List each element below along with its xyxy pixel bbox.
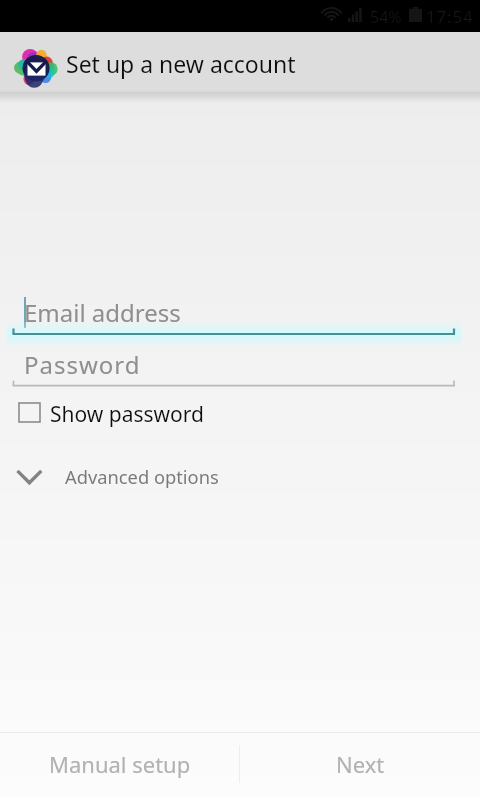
- staticText: 54%: [370, 6, 402, 28]
- staticText: 17:54: [426, 5, 474, 28]
- button[interactable]: Show password: [0, 397, 480, 431]
- button[interactable]: Email address: [12, 292, 456, 338]
- staticText: Password: [24, 348, 141, 381]
- other: Email app: [14, 47, 59, 87]
- button[interactable]: Manual setup: [0, 733, 239, 795]
- button[interactable]: Email app: [0, 32, 480, 94]
- staticText: Set up a new account: [66, 48, 296, 79]
- staticText: Manual setup: [49, 749, 191, 779]
- button[interactable]: Password: [12, 344, 456, 390]
- button[interactable]: Next: [240, 733, 480, 795]
- staticText: Email address: [24, 296, 181, 329]
- staticText: Advanced options: [65, 464, 219, 489]
- staticText: Next: [336, 749, 385, 779]
- staticText: Show password: [50, 400, 204, 429]
- button[interactable]: Advanced options: [0, 458, 480, 494]
